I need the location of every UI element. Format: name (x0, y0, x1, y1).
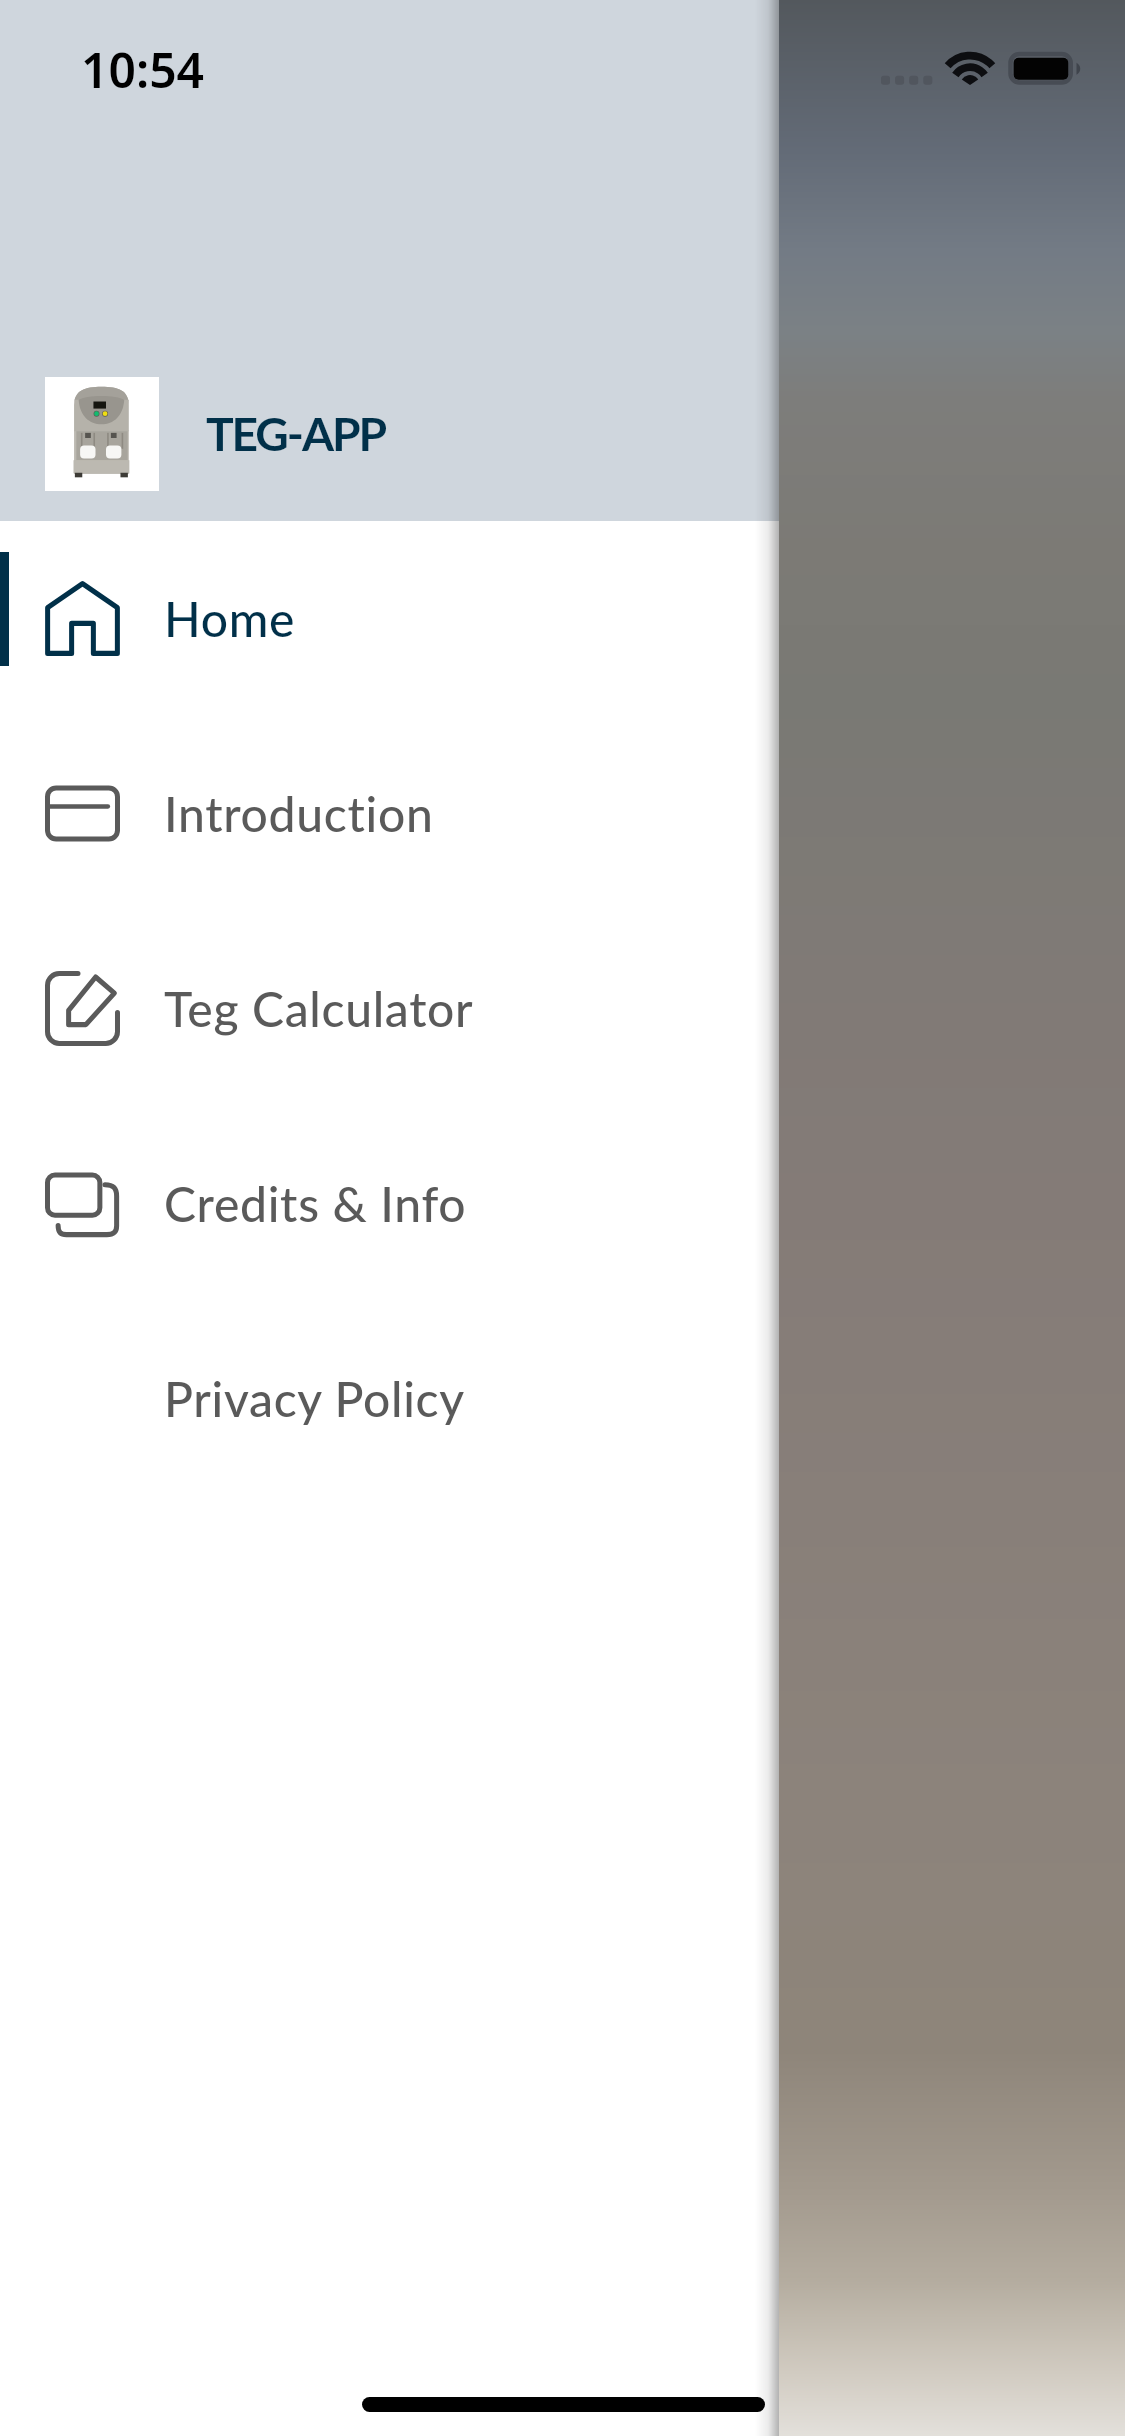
staticText: Credits & Info (164, 1175, 467, 1233)
staticText: TEG-APP (206, 405, 385, 460)
button[interactable]: TEG-APP (0, 359, 779, 521)
button[interactable]: Home (0, 521, 779, 716)
button[interactable]: Privacy Policy (0, 1301, 779, 1496)
button[interactable]: Introduction (0, 716, 779, 911)
staticText: Home (164, 590, 296, 648)
staticText: Privacy Policy (164, 1370, 465, 1428)
staticText: Introduction (164, 785, 434, 843)
staticText: Teg Calculator (164, 980, 474, 1038)
button[interactable]: Teg Calculator (0, 911, 779, 1106)
staticText: 10:54 (81, 37, 205, 102)
button[interactable]: Credits & Info (0, 1106, 779, 1301)
button[interactable]: Close menu (779, 0, 1125, 2436)
